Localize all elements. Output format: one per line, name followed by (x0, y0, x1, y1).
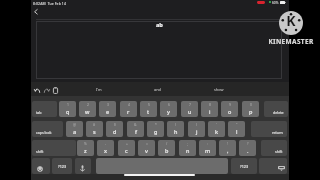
button[interactable] (75, 158, 91, 174)
button[interactable]: @ (66, 121, 83, 137)
button[interactable]: ( (167, 121, 184, 137)
staticText: + (126, 141, 128, 146)
staticText: 9 (229, 102, 231, 107)
button[interactable]: Redo (43, 87, 50, 94)
button[interactable]: / (158, 140, 175, 156)
button[interactable]: = (138, 140, 155, 156)
button[interactable]: % (77, 140, 94, 156)
staticText: caps lock (36, 130, 52, 135)
staticText: x (104, 147, 107, 154)
staticText: 0 (250, 102, 252, 107)
button[interactable]: ab (36, 21, 282, 79)
button[interactable]: Hide keyboard (278, 166, 285, 171)
button[interactable]: 6 (160, 101, 177, 117)
staticText: e (106, 108, 110, 115)
staticText: w (85, 108, 90, 115)
button[interactable]: 7 (181, 101, 198, 117)
staticText: / (166, 141, 168, 146)
button[interactable]: shift (261, 140, 287, 156)
button[interactable] (32, 158, 50, 174)
button[interactable]: 1 (59, 101, 76, 117)
staticText: v (145, 147, 148, 154)
button[interactable]: ? (239, 140, 256, 156)
button[interactable]: - (97, 140, 114, 156)
button[interactable]: 3 (99, 101, 116, 117)
staticText: z (84, 147, 87, 154)
button[interactable]: Back (32, 7, 41, 16)
staticText: KINEMASTER (266, 37, 316, 46)
staticText: # (93, 122, 96, 127)
staticText: 7 (189, 102, 191, 107)
staticText: ?123 (240, 164, 249, 169)
button[interactable]: $ (106, 121, 123, 137)
staticText: shift (275, 149, 283, 154)
button[interactable]: ' (208, 121, 225, 137)
staticText: tab (36, 110, 42, 115)
staticText: * (155, 122, 157, 127)
staticText: 2 (87, 102, 89, 107)
button[interactable]: caps lock (32, 121, 63, 137)
button[interactable]: show (198, 83, 240, 95)
staticText: s (93, 128, 96, 135)
button[interactable]: Voice input (80, 165, 85, 172)
staticText: 3 (107, 102, 109, 107)
staticText: = (146, 141, 148, 146)
staticText: y (167, 108, 170, 115)
button[interactable]: return (251, 121, 287, 137)
staticText: 4 (128, 102, 130, 107)
staticText: K (279, 11, 303, 35)
button[interactable]: ?123 (231, 158, 257, 174)
button[interactable]: Emoji (37, 166, 43, 172)
staticText: ab (156, 21, 163, 29)
staticText: & (134, 122, 137, 127)
button[interactable]: * (147, 121, 164, 137)
staticText: h (174, 128, 178, 135)
staticText: : (207, 141, 208, 146)
staticText: 60% (272, 1, 279, 5)
staticText: f (135, 128, 137, 135)
button[interactable]: " (228, 121, 245, 137)
button[interactable]: delete (264, 101, 288, 117)
staticText: g (154, 128, 158, 135)
staticText: 1 (67, 102, 69, 107)
button[interactable]: Clipboard (52, 87, 59, 94)
staticText: c (125, 147, 128, 154)
staticText: u (188, 108, 192, 115)
staticText: - (105, 141, 107, 146)
staticText: n (186, 147, 190, 154)
staticText: shift (36, 149, 44, 154)
staticText: ) (196, 122, 198, 127)
button[interactable]: # (86, 121, 103, 137)
button[interactable]: 2 (79, 101, 96, 117)
button[interactable]: ) (188, 121, 205, 137)
staticText: i (209, 108, 211, 115)
staticText: ; (187, 141, 188, 146)
staticText: 8 (209, 102, 211, 107)
staticText: I'm (96, 87, 102, 92)
staticText: and (154, 87, 161, 92)
button[interactable]: ; (179, 140, 196, 156)
staticText: p (249, 108, 253, 115)
button[interactable]: & (127, 121, 144, 137)
button[interactable]: I'm (78, 83, 120, 95)
button[interactable]: ?123 (52, 158, 72, 174)
button[interactable]: shift (32, 140, 76, 156)
button[interactable]: : (199, 140, 216, 156)
button[interactable]: 0 (242, 101, 259, 117)
button[interactable]: 5 (140, 101, 157, 117)
button[interactable]: Undo (34, 87, 41, 94)
staticText: k (215, 128, 219, 135)
button[interactable]: and (136, 83, 178, 95)
staticText: t (147, 108, 150, 115)
staticText: return (272, 130, 283, 135)
button[interactable]: 9 (221, 101, 238, 117)
button[interactable]: 8 (201, 101, 218, 117)
staticText: % (84, 141, 87, 146)
staticText: " (236, 122, 238, 127)
button[interactable]: 4 (120, 101, 137, 117)
button[interactable] (259, 158, 287, 174)
button[interactable]: tab (32, 101, 57, 117)
button[interactable]: ! (219, 140, 236, 156)
button[interactable]: + (118, 140, 135, 156)
